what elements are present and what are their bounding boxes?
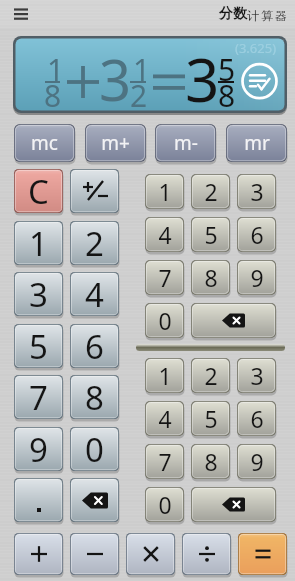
button[interactable]: 4 (70, 272, 119, 320)
staticText: 3 (29, 272, 48, 316)
button[interactable]: Plus (14, 533, 63, 579)
button[interactable]: 7 (145, 444, 184, 483)
button[interactable]: Minus (70, 533, 119, 579)
staticText: 分数 (219, 5, 247, 23)
staticText: 8 (44, 75, 62, 116)
staticText: 9 (250, 446, 264, 477)
button[interactable]: 5 (14, 324, 63, 372)
staticText: 5 (204, 403, 218, 434)
staticText: 7 (29, 375, 48, 419)
button[interactable]: 8 (191, 260, 230, 299)
button[interactable]: C (14, 169, 63, 217)
button[interactable]: 1 (14, 221, 63, 269)
staticText: 2 (204, 176, 218, 207)
button[interactable]: m- (155, 124, 216, 166)
button[interactable]: 2 (70, 221, 119, 269)
button[interactable]: 0 (145, 303, 184, 342)
staticText: m+ (101, 130, 130, 156)
button[interactable]: 6 (237, 217, 276, 256)
staticText: 3 (185, 38, 220, 115)
button[interactable] (70, 169, 119, 217)
button[interactable]: Backspace (191, 303, 276, 342)
staticText: 7 (158, 446, 172, 477)
button[interactable]: 2 (191, 358, 230, 397)
button[interactable]: 3 (237, 358, 276, 397)
button[interactable]: Delete (70, 478, 119, 526)
button[interactable]: Equals (238, 533, 287, 579)
button[interactable]: 3 (237, 174, 276, 213)
staticText: 0 (158, 489, 172, 520)
button[interactable]: 1 (145, 174, 184, 213)
button[interactable]: 4 (145, 217, 184, 256)
button[interactable]: 9 (237, 444, 276, 483)
staticText: 7 (158, 262, 172, 293)
staticText: mc (31, 130, 58, 156)
button[interactable]: mr (226, 124, 287, 166)
button[interactable]: Show history (239, 61, 280, 102)
staticText: 3 (99, 41, 132, 117)
button[interactable]: Multiply (126, 533, 175, 579)
staticText: 4 (158, 403, 172, 434)
staticText: 8 (204, 446, 218, 477)
staticText: 2 (130, 75, 148, 116)
staticText: 3 (250, 360, 264, 391)
button[interactable]: Menu (8, 3, 34, 25)
staticText: 1 (29, 221, 48, 265)
staticText: 8 (204, 262, 218, 293)
staticText: 1 (47, 49, 65, 90)
staticText: 6 (250, 219, 264, 250)
button[interactable]: 1 (145, 358, 184, 397)
button[interactable]: Backspace (191, 487, 276, 526)
button[interactable]: 6 (70, 324, 119, 372)
staticText: 5 (204, 219, 218, 250)
staticText: 2 (85, 221, 104, 265)
button[interactable]: 4 (145, 401, 184, 440)
button[interactable] (14, 478, 63, 526)
staticText: 0 (85, 427, 104, 471)
staticText: 3 (250, 176, 264, 207)
button[interactable]: 2 (191, 174, 230, 213)
staticText: 6 (85, 324, 104, 368)
button[interactable]: 5 (191, 401, 230, 440)
button[interactable]: 8 (191, 444, 230, 483)
button[interactable]: m+ (85, 124, 146, 166)
staticText: 1 (158, 360, 172, 391)
button[interactable]: 7 (14, 375, 63, 423)
staticText: 计算器 (247, 8, 289, 23)
button[interactable]: 7 (145, 260, 184, 299)
button[interactable]: 3 (14, 272, 63, 320)
staticText: C (28, 169, 49, 213)
button[interactable]: 6 (237, 401, 276, 440)
staticText: 0 (158, 305, 172, 336)
staticText: 1 (133, 49, 151, 90)
staticText: mr (244, 130, 270, 156)
staticText: 8 (85, 375, 104, 419)
staticText: 4 (85, 272, 104, 316)
button[interactable]: Divide (182, 533, 231, 579)
staticText: 1 (158, 176, 172, 207)
staticText: 8 (218, 75, 236, 116)
staticText: (3.625) (235, 39, 277, 57)
staticText: 5 (29, 324, 48, 368)
staticText: 4 (158, 219, 172, 250)
button[interactable]: 5 (191, 217, 230, 256)
staticText: 2 (204, 360, 218, 391)
button[interactable]: 0 (145, 487, 184, 526)
staticText: 9 (29, 427, 48, 471)
button[interactable]: mc (14, 124, 75, 166)
button[interactable]: 8 (70, 375, 119, 423)
staticText: 9 (250, 262, 264, 293)
staticText: m- (174, 130, 198, 156)
button[interactable]: 0 (70, 427, 119, 475)
button[interactable]: 9 (14, 427, 63, 475)
staticText: 6 (250, 403, 264, 434)
button[interactable]: 9 (237, 260, 276, 299)
staticText: 5 (218, 49, 236, 90)
